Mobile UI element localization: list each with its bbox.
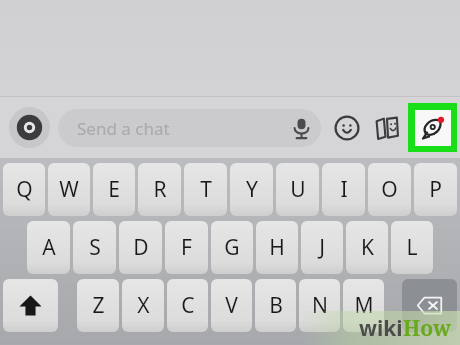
staticText: wiki [359,314,403,343]
staticText: P [429,175,442,204]
button[interactable]: P [414,163,457,216]
button[interactable]: Shift [3,279,58,332]
button[interactable]: Backspace [402,279,457,332]
button[interactable]: E [93,163,135,216]
staticText: J [319,233,325,262]
button[interactable]: W [48,163,90,216]
button[interactable]: Emoji [327,108,367,148]
button[interactable]: F [165,221,208,274]
button[interactable]: M [343,279,384,332]
button[interactable]: U [276,163,319,216]
staticText: C [181,291,195,320]
staticText: Q [16,175,33,204]
staticText: H [269,233,285,262]
staticText: F [181,233,192,262]
button[interactable]: Rockets and games [408,103,457,152]
staticText: Z [92,291,105,320]
button[interactable]: Camera [9,107,50,148]
button[interactable]: T [184,163,227,216]
button[interactable]: Q [3,163,45,216]
staticText: How [403,314,452,343]
staticText: Y [246,175,258,204]
staticText: E [108,175,120,204]
button[interactable]: G [211,221,253,274]
button[interactable]: Y [230,163,273,216]
staticText: X [137,291,150,320]
button[interactable]: I [322,163,365,216]
button[interactable]: L [391,221,433,274]
button[interactable]: Z [77,279,119,332]
staticText: A [42,233,56,262]
button[interactable]: D [119,221,162,274]
button[interactable]: V [211,279,252,332]
staticText: V [225,291,238,320]
button[interactable]: H [256,221,298,274]
staticText: R [153,175,167,204]
staticText: I [340,175,348,204]
button[interactable]: C [167,279,208,332]
staticText: M [354,291,374,320]
staticText: S [89,233,101,262]
button[interactable]: R [138,163,181,216]
button[interactable]: B [255,279,296,332]
button[interactable]: A [27,221,70,274]
button[interactable]: Voice message [284,111,318,145]
staticText: K [361,233,374,262]
staticText: Send a chat [77,117,170,140]
button[interactable]: Stickers [367,108,407,148]
staticText: G [224,233,240,262]
staticText: O [381,175,398,204]
staticText: U [290,175,306,204]
button[interactable]: S [73,221,116,274]
staticText: N [312,291,328,320]
button[interactable]: O [368,163,411,216]
button[interactable]: K [346,221,388,274]
button[interactable]: N [299,279,340,332]
staticText: T [200,175,212,204]
button[interactable]: J [301,221,343,274]
staticText: L [406,233,418,262]
button[interactable]: Send a chat [58,109,321,147]
staticText: B [269,291,283,320]
staticText: W [59,175,79,204]
button[interactable]: X [122,279,164,332]
staticText: D [133,233,149,262]
